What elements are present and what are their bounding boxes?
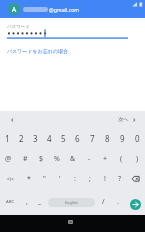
staticText: % xyxy=(54,154,60,164)
button[interactable]: A xyxy=(8,3,20,15)
button[interactable]: ( xyxy=(113,149,129,169)
staticText: 9 xyxy=(120,133,125,144)
staticText: _ xyxy=(38,197,42,207)
staticText: 5 xyxy=(61,133,66,144)
staticText: A xyxy=(12,5,17,14)
staticText: : xyxy=(74,174,76,184)
button[interactable]: 6 xyxy=(70,127,85,149)
button[interactable]: 9 xyxy=(115,127,130,149)
staticText: . xyxy=(117,197,119,207)
staticText: 8 xyxy=(105,133,110,144)
staticText: 6 xyxy=(75,133,80,144)
button[interactable]: $ xyxy=(33,149,49,169)
button[interactable]: @ xyxy=(0,149,17,169)
staticText: ; xyxy=(89,174,91,184)
staticText: =\< xyxy=(7,176,14,182)
staticText: パスワード xyxy=(7,24,30,30)
button[interactable]: ? xyxy=(112,169,127,189)
button[interactable]: ; xyxy=(82,169,97,189)
button[interactable]: 1 xyxy=(0,127,14,149)
staticText: 1 xyxy=(5,133,10,144)
button[interactable]: " xyxy=(37,169,52,189)
button[interactable]: , xyxy=(20,189,33,215)
button[interactable]: % xyxy=(49,149,65,169)
staticText: 2 xyxy=(19,133,24,144)
button[interactable]: =\< xyxy=(0,169,21,189)
button[interactable]: . xyxy=(111,189,125,215)
staticText: 7 xyxy=(90,133,95,144)
staticText: ‹ xyxy=(11,115,14,124)
button[interactable]: 2 xyxy=(14,127,28,149)
staticText: 3 xyxy=(33,133,38,144)
staticText: ' xyxy=(59,174,61,184)
staticText: + xyxy=(103,154,108,164)
staticText: / xyxy=(102,197,105,207)
button[interactable]: パスワードをお忘れの場合 xyxy=(7,48,68,54)
button[interactable]: & xyxy=(65,149,81,169)
staticText: パスワードをお忘れの場合 xyxy=(7,48,68,54)
staticText: & xyxy=(70,154,76,164)
button[interactable]: 5 xyxy=(56,127,70,149)
button[interactable]: # xyxy=(17,149,33,169)
button[interactable]: - xyxy=(81,149,97,169)
staticText: # xyxy=(23,154,28,164)
button[interactable]: ! xyxy=(97,169,112,189)
button[interactable]: ABC xyxy=(0,189,20,215)
staticText: ( xyxy=(120,154,123,164)
button[interactable]: 0 xyxy=(130,127,145,149)
button[interactable]: 7 xyxy=(85,127,100,149)
button[interactable]: 8 xyxy=(100,127,115,149)
staticText: @ xyxy=(5,154,12,164)
staticText: " xyxy=(43,174,46,184)
button[interactable] xyxy=(68,220,73,224)
button[interactable]: _ xyxy=(33,189,47,215)
button[interactable]: ) xyxy=(129,149,145,169)
staticText: ) xyxy=(136,154,139,164)
staticText: ? xyxy=(118,174,122,184)
staticText: @gmail.com xyxy=(49,6,80,13)
staticText: 次へ xyxy=(118,116,129,123)
button[interactable]: English xyxy=(47,189,96,215)
staticText: › xyxy=(133,115,136,124)
staticText: $ xyxy=(39,154,44,164)
staticText: , xyxy=(26,197,28,207)
button[interactable]: * xyxy=(21,169,37,189)
button[interactable]: ‹ xyxy=(0,111,24,127)
button[interactable]: : xyxy=(67,169,82,189)
button[interactable]: ' xyxy=(52,169,67,189)
staticText: - xyxy=(88,154,91,164)
staticText: English xyxy=(65,200,78,205)
button[interactable] xyxy=(125,189,145,215)
staticText: 4 xyxy=(47,133,52,144)
button[interactable] xyxy=(127,169,145,189)
button[interactable]: / xyxy=(96,189,111,215)
button[interactable]: 4 xyxy=(42,127,56,149)
button[interactable]: 3 xyxy=(28,127,42,149)
button[interactable]: + xyxy=(97,149,113,169)
staticText: * xyxy=(27,174,31,184)
staticText: 0 xyxy=(135,133,140,144)
button[interactable]: 次へ xyxy=(118,111,145,127)
staticText: ! xyxy=(104,174,106,184)
staticText: ABC xyxy=(6,199,15,205)
